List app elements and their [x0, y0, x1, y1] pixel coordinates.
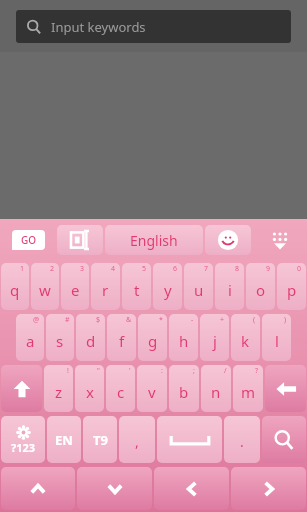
staticText: EN	[55, 431, 73, 449]
staticText: Input keywords	[51, 18, 146, 36]
button[interactable]: ;	[169, 365, 199, 412]
button[interactable]: 9	[246, 263, 275, 310]
staticText: English	[130, 231, 178, 250]
staticText: #	[65, 315, 70, 325]
button[interactable]: Symbols and settings	[1, 416, 45, 463]
staticText: a	[26, 331, 35, 351]
button[interactable]: Emoji	[205, 225, 251, 255]
button[interactable]: EN	[47, 416, 81, 463]
button[interactable]: @	[16, 314, 44, 361]
button[interactable]: Shift	[1, 365, 42, 412]
staticText: m	[241, 382, 256, 402]
staticText: 3	[80, 264, 85, 274]
button[interactable]: +	[200, 314, 229, 361]
button[interactable]: $	[76, 314, 105, 361]
button[interactable]: T9	[83, 416, 117, 463]
staticText: r	[102, 280, 109, 300]
staticText: 6	[173, 264, 178, 274]
button[interactable]: :	[137, 365, 167, 412]
staticText: p	[287, 280, 297, 300]
button[interactable]: Input keywords	[16, 10, 291, 43]
staticText: s	[56, 331, 64, 351]
button[interactable]: English	[105, 225, 203, 255]
staticText: 5	[142, 264, 147, 274]
button[interactable]: 4	[91, 263, 120, 310]
staticText: T9	[93, 431, 108, 449]
staticText: y	[164, 280, 172, 300]
button[interactable]: 5	[122, 263, 151, 310]
button[interactable]: !	[44, 365, 73, 412]
staticText: 1	[20, 264, 25, 274]
button[interactable]: 3	[61, 263, 89, 310]
staticText: ;	[193, 366, 195, 376]
staticText: !	[67, 366, 69, 376]
staticText: b	[179, 382, 189, 402]
staticText: f	[119, 331, 125, 351]
staticText: )	[284, 315, 287, 325]
button[interactable]: Backspace	[265, 365, 306, 412]
button[interactable]: ,	[119, 416, 155, 463]
staticText: e	[71, 280, 80, 300]
button[interactable]: )	[262, 314, 291, 361]
staticText: i	[228, 280, 232, 300]
staticText: 7	[204, 264, 209, 274]
button[interactable]: .	[224, 416, 260, 463]
staticText: 4	[111, 264, 116, 274]
button[interactable]: Switch layout	[57, 225, 103, 255]
button[interactable]: #	[46, 314, 74, 361]
staticText: n	[211, 382, 221, 402]
button[interactable]: ?	[233, 365, 263, 412]
button[interactable]: Down	[77, 467, 152, 510]
staticText: :	[161, 366, 163, 376]
staticText: x	[86, 382, 94, 402]
staticText: w	[39, 280, 51, 300]
staticText: v	[148, 382, 156, 402]
staticText: q	[10, 280, 20, 300]
staticText: ?123	[11, 440, 36, 455]
staticText: *	[159, 315, 163, 325]
staticText: o	[256, 280, 266, 300]
staticText: '	[129, 366, 131, 376]
button[interactable]: 1	[1, 263, 29, 310]
button[interactable]: -	[169, 314, 198, 361]
button[interactable]: 0	[277, 263, 306, 310]
staticText: &	[126, 315, 132, 325]
staticText: /	[224, 366, 227, 376]
staticText: k	[241, 331, 250, 351]
button[interactable]: 7	[184, 263, 213, 310]
staticText: $	[96, 315, 101, 325]
staticText: 0	[297, 264, 302, 274]
button[interactable]: Search	[262, 416, 306, 463]
button[interactable]: (	[231, 314, 260, 361]
button[interactable]: 6	[153, 263, 182, 310]
button[interactable]: 8	[215, 263, 244, 310]
staticText: ?	[255, 366, 259, 376]
staticText: j	[213, 331, 217, 351]
staticText: 2	[50, 264, 55, 274]
button[interactable]: Right	[231, 467, 306, 510]
button[interactable]: Left	[154, 467, 229, 510]
staticText: +	[220, 315, 225, 325]
staticText: -	[191, 315, 194, 325]
button[interactable]: '	[106, 365, 135, 412]
staticText: l	[275, 331, 279, 351]
staticText: g	[148, 331, 158, 351]
staticText: @	[33, 315, 40, 325]
button[interactable]: Hide keyboard	[252, 219, 307, 261]
button[interactable]: "	[75, 365, 104, 412]
button[interactable]: &	[107, 314, 136, 361]
button[interactable]: 2	[31, 263, 59, 310]
button[interactable]: /	[201, 365, 231, 412]
button[interactable]: Up	[1, 467, 75, 510]
button[interactable]: *	[138, 314, 167, 361]
button[interactable]: Space	[157, 416, 222, 463]
staticText: h	[179, 331, 189, 351]
staticText: u	[194, 280, 204, 300]
staticText: 8	[235, 264, 240, 274]
staticText: 9	[266, 264, 271, 274]
staticText: GO	[21, 233, 37, 247]
staticText: "	[97, 366, 100, 376]
staticText: z	[55, 382, 63, 402]
button[interactable]: Go	[0, 219, 56, 261]
staticText: ,	[135, 432, 139, 451]
